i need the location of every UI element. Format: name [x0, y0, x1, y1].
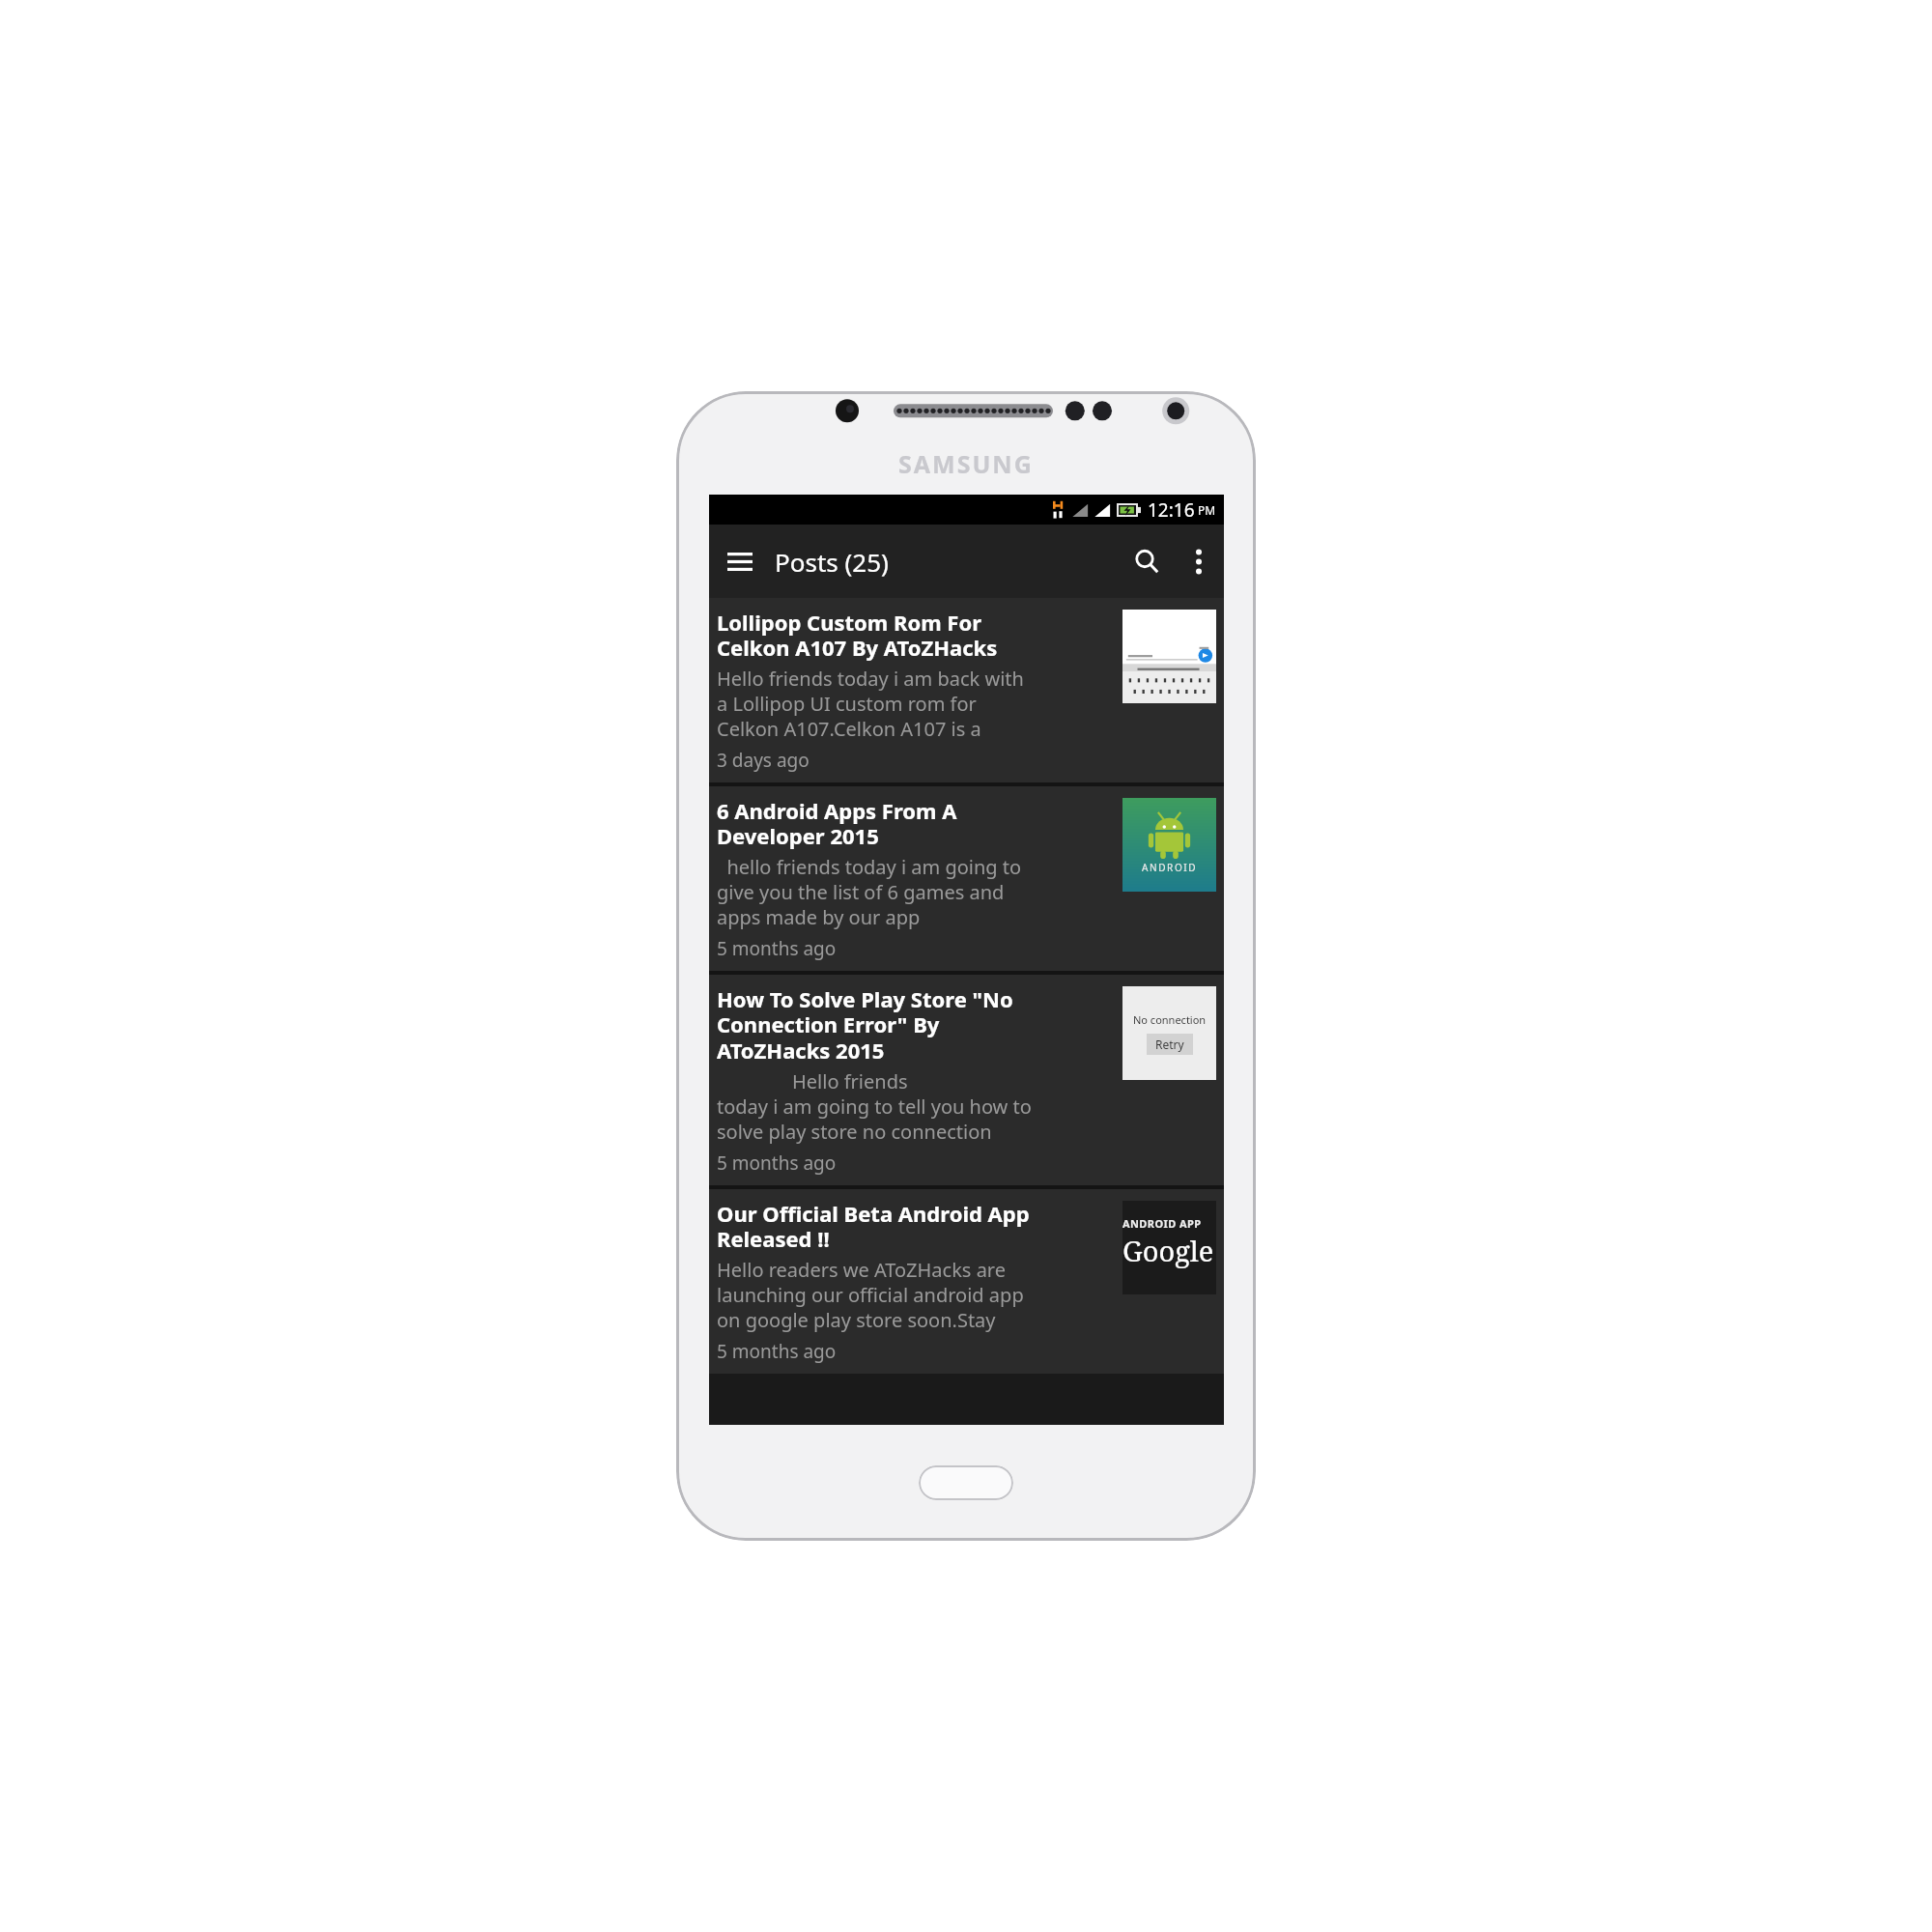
staticText: Lollipop Custom Rom For Celkon A107 By A…	[717, 608, 998, 663]
button[interactable]: How To Solve Play Store "No Connection E…	[709, 975, 1224, 1185]
staticText: hello friends today i am going to give y…	[717, 854, 1022, 930]
staticText: 6 Android Apps From A Developer 2015	[717, 796, 957, 851]
staticText: ANDROID APP ON	[1122, 1216, 1216, 1231]
button[interactable]: 6 Android Apps From A Developer 2015	[709, 786, 1224, 971]
staticText: 5 months ago	[717, 1151, 837, 1176]
staticText: Hello friends today i am back with a Lol…	[717, 666, 1024, 742]
staticText: SAMSUNG	[898, 447, 1034, 480]
staticText: Hello friends today i am going to tell y…	[717, 1068, 1032, 1145]
button[interactable]: Home	[919, 1465, 1013, 1500]
button[interactable]: Open navigation drawer	[715, 536, 765, 586]
staticText: ANDROID	[1142, 861, 1198, 874]
staticText: 12:16	[1148, 497, 1195, 523]
button[interactable]: Retry	[1147, 1034, 1193, 1055]
button[interactable]: Lollipop Custom Rom For Celkon A107 By A…	[709, 598, 1224, 782]
staticText: 5 months ago	[717, 1339, 837, 1364]
button[interactable]: Search	[1120, 534, 1174, 588]
staticText: Hello readers we AToZHacks are launching…	[717, 1257, 1024, 1333]
staticText: How To Solve Play Store "No Connection E…	[717, 984, 1013, 1065]
staticText: Google	[1122, 1232, 1214, 1269]
staticText: No connection	[1133, 1012, 1207, 1027]
staticText: Our Official Beta Android App Released !…	[717, 1199, 1030, 1254]
staticText: Posts (25)	[775, 545, 1120, 579]
button[interactable]: Our Official Beta Android App Released !…	[709, 1189, 1224, 1374]
staticText: Retry	[1155, 1037, 1184, 1052]
staticText: PM	[1198, 502, 1216, 518]
staticText: 5 months ago	[717, 936, 837, 961]
button[interactable]: More options	[1174, 536, 1224, 586]
staticText: 3 days ago	[717, 748, 810, 773]
